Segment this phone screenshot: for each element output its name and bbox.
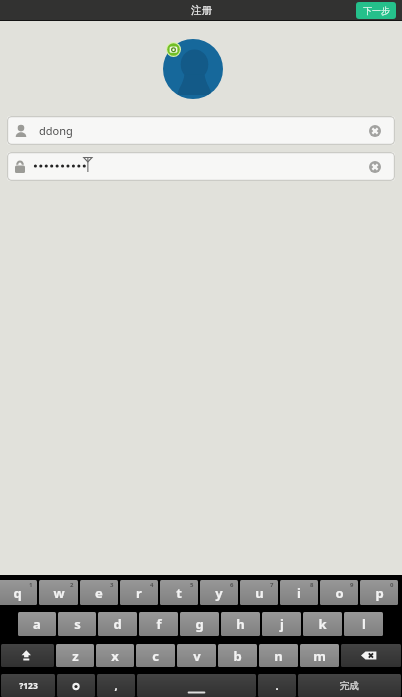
staticText: p [375, 584, 384, 602]
button[interactable]: Change photo [166, 42, 181, 57]
button[interactable]: ddong [7, 116, 395, 145]
button[interactable]: Clear [7, 152, 395, 181]
button[interactable]: x [96, 644, 134, 667]
staticText: 2 [70, 581, 74, 589]
button[interactable]: n [259, 644, 298, 667]
staticText: ddong [39, 123, 73, 138]
button[interactable]: Input options [57, 674, 95, 697]
button[interactable]: s [58, 612, 96, 636]
staticText: 9 [350, 581, 354, 589]
staticText: k [318, 615, 327, 633]
button[interactable]: m [300, 644, 339, 667]
staticText: z [72, 647, 79, 665]
staticText: j [280, 615, 284, 633]
button[interactable]: 完成 [298, 674, 401, 697]
staticText: u [255, 584, 264, 602]
staticText: q [13, 584, 22, 602]
button[interactable]: Backspace [341, 644, 401, 667]
staticText: 7 [270, 581, 274, 589]
staticText: v [193, 647, 201, 665]
staticText: l [362, 615, 366, 633]
staticText: 完成 [340, 680, 359, 692]
button[interactable]: f [139, 612, 178, 636]
staticText: y [215, 584, 223, 602]
staticText: w [53, 584, 65, 602]
staticText: a [33, 615, 41, 633]
staticText: h [236, 615, 245, 633]
button[interactable]: Clear [369, 125, 381, 137]
staticText: 3 [110, 581, 114, 589]
button[interactable]: Shift [1, 644, 54, 667]
staticText: 8 [310, 581, 314, 589]
button[interactable]: u [240, 580, 278, 605]
button[interactable]: o [320, 580, 358, 605]
button[interactable]: . [258, 674, 296, 697]
button[interactable]: i [280, 580, 318, 605]
button[interactable]: w [39, 580, 78, 605]
button[interactable]: p [360, 580, 398, 605]
button[interactable]: v [177, 644, 216, 667]
button[interactable]: k [303, 612, 342, 636]
button[interactable]: d [98, 612, 137, 636]
staticText: . [275, 678, 279, 693]
button[interactable]: g [180, 612, 219, 636]
button[interactable]: h [221, 612, 260, 636]
button[interactable]: y [200, 580, 238, 605]
staticText: 下一步 [363, 5, 390, 16]
staticText: c [152, 647, 159, 665]
button[interactable]: j [262, 612, 301, 636]
staticText: d [113, 615, 122, 633]
staticText: , [114, 678, 118, 693]
button[interactable]: c [136, 644, 175, 667]
button[interactable]: 下一步 [356, 2, 396, 19]
staticText: o [335, 584, 344, 602]
button[interactable]: Clear [369, 161, 381, 173]
staticText: 6 [230, 581, 234, 589]
staticText: g [195, 615, 204, 633]
button[interactable]: t [160, 580, 198, 605]
button[interactable]: , [97, 674, 135, 697]
staticText: x [111, 647, 119, 665]
button[interactable]: e [80, 580, 118, 605]
staticText: m [313, 647, 326, 665]
staticText: r [136, 584, 142, 602]
staticText: t [176, 584, 182, 602]
button[interactable]: z [56, 644, 94, 667]
staticText: i [297, 584, 301, 602]
button[interactable]: b [218, 644, 257, 667]
staticText: 4 [150, 581, 154, 589]
button[interactable]: l [344, 612, 383, 636]
staticText: f [156, 615, 162, 633]
button[interactable]: Space [137, 674, 256, 697]
staticText: n [274, 647, 283, 665]
button[interactable]: r [120, 580, 158, 605]
staticText: s [74, 615, 81, 633]
button[interactable]: ?123 [1, 674, 55, 697]
staticText: ?123 [19, 680, 38, 692]
staticText: e [95, 584, 103, 602]
button[interactable]: a [18, 612, 56, 636]
staticText: b [233, 647, 242, 665]
staticText: 5 [190, 581, 194, 589]
staticText: 1 [29, 581, 33, 589]
button[interactable]: q [0, 580, 37, 605]
staticText: 0 [390, 581, 394, 589]
staticText: 注册 [191, 4, 212, 17]
